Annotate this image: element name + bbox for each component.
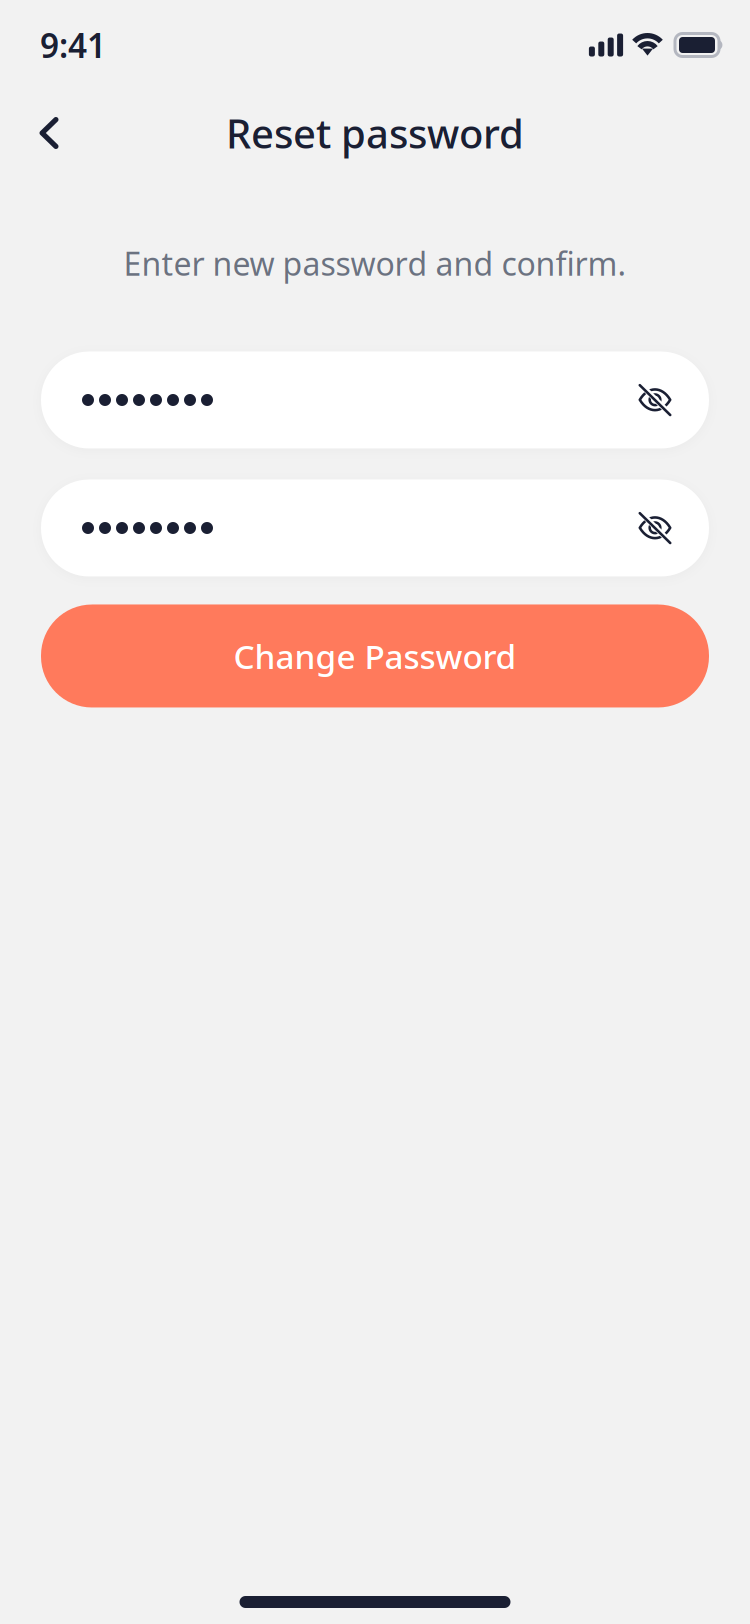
staticText: Change Password — [233, 634, 516, 678]
staticText: Enter new password and confirm. — [123, 242, 626, 284]
button[interactable]: Back — [21, 105, 77, 161]
button[interactable]: Show new password — [633, 378, 677, 422]
button[interactable]: Change Password — [41, 604, 709, 707]
staticText: 9:41 — [40, 23, 106, 67]
staticText: Reset password — [226, 106, 524, 159]
button[interactable]: Show confirmed password — [633, 506, 677, 550]
